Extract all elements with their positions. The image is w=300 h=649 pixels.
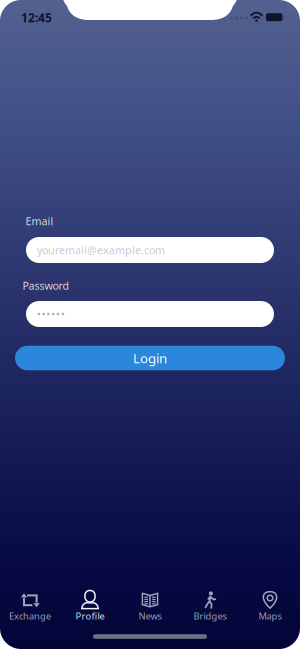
staticText: Email [25, 214, 53, 228]
staticText: Login [133, 349, 167, 367]
staticText: Bridges [193, 610, 226, 622]
button[interactable]: Email [26, 237, 274, 263]
staticText: Maps [258, 610, 281, 622]
button[interactable]: Exchange [9, 590, 51, 620]
button[interactable]: News [138, 590, 161, 620]
button[interactable]: Login [15, 346, 285, 370]
staticText: Exchange [9, 610, 51, 622]
staticText: Profile [75, 610, 104, 622]
staticText: News [138, 610, 161, 622]
staticText: Password [22, 278, 69, 293]
staticText: youremail@example.com [37, 243, 165, 257]
button[interactable]: Maps [258, 590, 281, 620]
button[interactable]: Bridges [193, 590, 226, 620]
staticText: 12:45 [21, 9, 52, 25]
button[interactable]: Profile [75, 590, 104, 620]
button[interactable]: Password [26, 301, 274, 327]
